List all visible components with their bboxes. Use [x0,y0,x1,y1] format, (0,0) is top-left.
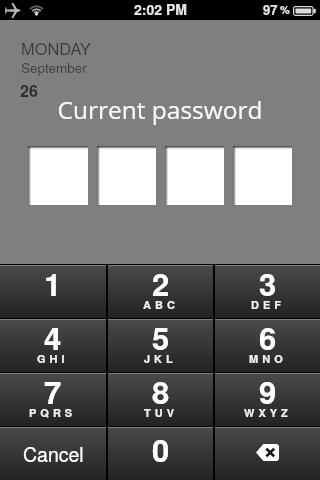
staticText: WXYZ [244,405,292,421]
staticText: MONDAY [21,36,91,59]
button[interactable]: 4 [0,319,106,372]
staticText: 8 [152,369,170,413]
staticText: JKL [144,351,177,367]
staticText: DEF [251,297,285,313]
staticText: MNO [249,351,287,367]
button[interactable] [165,146,224,205]
button[interactable]: 7 [0,373,106,426]
button[interactable]: 3 [215,265,320,318]
button[interactable]: Cancel [0,427,106,480]
staticText: 2 [152,261,170,305]
staticText: PQRS [29,405,77,421]
staticText: 5 [152,315,170,359]
button[interactable]: 8 [108,373,213,426]
button[interactable]: 5 [108,319,213,372]
staticText: 1 [44,261,62,305]
staticText: 26 [20,79,38,102]
button[interactable]: 2 [108,265,213,318]
staticText: % [280,2,290,18]
staticText: 3 [259,261,277,305]
staticText: 6 [259,315,277,359]
button[interactable]: 1 [0,265,106,318]
button[interactable] [233,146,292,205]
staticText: 0 [152,427,170,471]
button[interactable]: 6 [215,319,320,372]
staticText: GHI [37,351,69,367]
staticText: ABC [143,297,179,313]
staticText: Current password [0,93,320,126]
staticText: 4 [44,315,62,359]
button[interactable] [97,146,156,205]
staticText: 2:02 PM [134,0,187,19]
button[interactable]: 9 [215,373,320,426]
staticText: Cancel [23,440,84,468]
staticText: 7 [44,369,62,413]
button[interactable] [28,146,88,205]
button[interactable]: Delete [215,427,320,480]
staticText: TUV [144,405,178,421]
button[interactable]: 0 [108,427,213,480]
staticText: 97 [263,0,278,19]
staticText: September [21,58,87,77]
staticText: 9 [259,369,277,413]
